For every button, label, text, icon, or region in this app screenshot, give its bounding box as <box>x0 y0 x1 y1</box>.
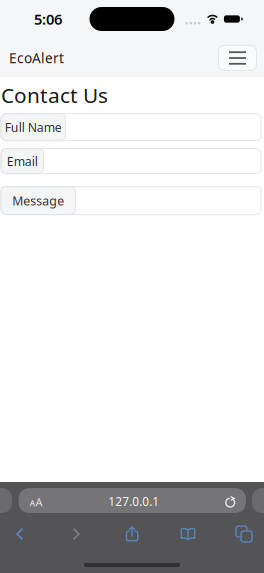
button[interactable]: Bookmarks <box>168 521 208 547</box>
button[interactable]: Share <box>112 521 152 547</box>
button[interactable]: Back <box>0 521 40 547</box>
staticText: Contact Us <box>1 81 108 109</box>
staticText: Email <box>7 153 38 169</box>
staticText: 5:06 <box>34 9 62 29</box>
staticText: Full Name <box>5 119 62 135</box>
staticText: ᴀA <box>29 495 42 509</box>
staticText: Message <box>12 192 64 209</box>
staticText: EcoAlert <box>9 49 64 67</box>
staticText: 127.0.0.1 <box>108 494 159 509</box>
button[interactable]: Tabs <box>224 521 264 547</box>
button[interactable]: Menu <box>218 45 256 70</box>
button[interactable]: Forward <box>56 521 96 547</box>
